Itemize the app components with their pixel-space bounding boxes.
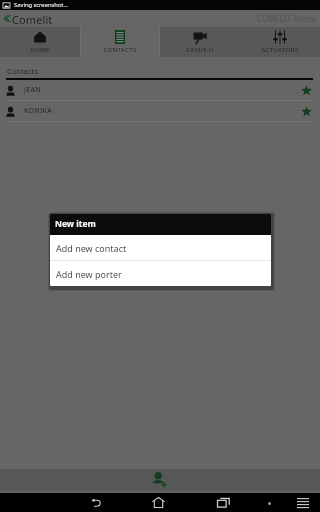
staticText: JEAN [24,85,41,95]
staticText: Saving screenshot... [14,1,69,9]
button[interactable]: ACTUATORS [240,27,320,57]
button[interactable]: KONIKA [0,101,320,121]
staticText: Add new contact [56,242,127,254]
staticText: Comelit [12,12,53,27]
staticText: CONTACTS [103,46,137,54]
button[interactable]: Add new porter [50,261,271,286]
staticText: COMELIT Home [257,13,317,24]
button[interactable]: CAM/E.U [160,27,240,57]
button[interactable]: Home [147,493,169,512]
button[interactable]: Recent apps [212,493,234,512]
button[interactable]: HOME [0,27,80,57]
staticText: New item [55,218,96,230]
button[interactable]: Add new contact [50,235,271,260]
button[interactable]: Menu [292,493,314,512]
button[interactable]: CONTACTS [80,27,160,57]
staticText: KONIKA [24,106,52,116]
button[interactable]: Back [85,493,107,512]
staticText: CAM/E.U [186,46,214,54]
button[interactable]: JEAN [0,80,320,100]
staticText: ACTUATORS [261,46,299,54]
staticText: Contacts [7,66,38,76]
staticText: HOME [30,46,50,54]
button[interactable]: Add contact [148,468,170,490]
staticText: Add new porter [56,268,122,280]
